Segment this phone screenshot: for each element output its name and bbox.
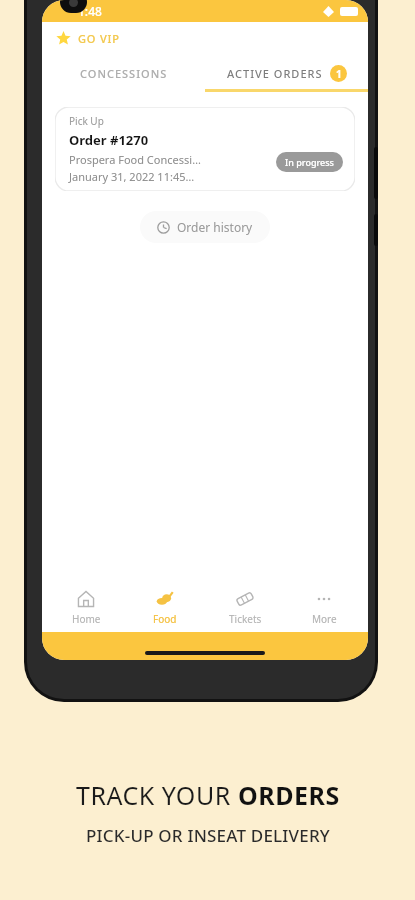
staticText: ACTIVE ORDERS bbox=[227, 66, 323, 81]
button[interactable]: ACTIVE ORDERS bbox=[205, 54, 368, 92]
staticText: PICK-UP OR INSEAT DELIVERY bbox=[86, 824, 330, 847]
staticText: TRACK YOUR bbox=[76, 778, 238, 812]
staticText: ORDERS bbox=[238, 778, 340, 812]
button[interactable]: Order history bbox=[140, 211, 270, 243]
staticText: Order #1270 bbox=[69, 131, 149, 149]
staticText: 1:48 bbox=[78, 3, 102, 19]
staticText: Food bbox=[153, 612, 177, 626]
button[interactable]: CONCESSIONS bbox=[42, 54, 205, 92]
staticText: 1 bbox=[336, 67, 342, 81]
button[interactable]: More bbox=[288, 584, 360, 632]
staticText: Pick Up bbox=[69, 114, 104, 128]
staticText: Order history bbox=[177, 219, 253, 235]
staticText: GO VIP bbox=[78, 31, 120, 46]
staticText: January 31, 2022 11:45… bbox=[69, 169, 195, 184]
button[interactable]: Food bbox=[129, 584, 201, 632]
button[interactable]: Tickets bbox=[209, 584, 281, 632]
button[interactable]: Home bbox=[50, 584, 122, 632]
staticText: In progress bbox=[285, 156, 334, 168]
staticText: Home bbox=[72, 612, 101, 626]
button[interactable]: GO VIP bbox=[42, 22, 368, 54]
staticText: More bbox=[312, 612, 337, 626]
staticText: Tickets bbox=[229, 612, 262, 626]
staticText: CONCESSIONS bbox=[80, 66, 168, 81]
button[interactable]: Pick Up bbox=[55, 107, 355, 191]
staticText: Prospera Food Concessi… bbox=[69, 152, 201, 167]
